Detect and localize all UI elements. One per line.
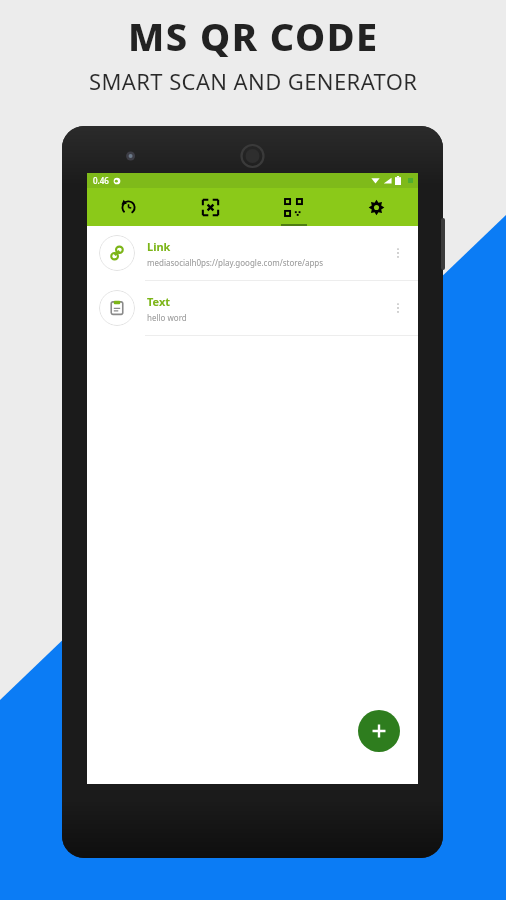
button[interactable]: More options xyxy=(386,241,410,265)
staticText: 0.46 xyxy=(93,175,109,186)
staticText: Link xyxy=(147,239,171,254)
button[interactable]: History xyxy=(87,188,169,226)
button[interactable]: Add xyxy=(358,710,400,752)
staticText: Text xyxy=(147,294,171,309)
staticText: SMART SCAN AND GENERATOR xyxy=(89,66,418,96)
button[interactable]: Settings xyxy=(335,188,418,226)
button[interactable]: Link xyxy=(87,226,418,281)
button[interactable]: More options xyxy=(386,296,410,320)
button[interactable]: Scan xyxy=(169,188,252,226)
staticText: hello word xyxy=(147,312,187,323)
button[interactable]: Text xyxy=(87,281,418,336)
button[interactable]: Generate xyxy=(252,188,335,226)
staticText: mediasocialh0ps://play.google.com/store/… xyxy=(147,257,324,268)
staticText: MS QR CODE xyxy=(128,10,379,62)
